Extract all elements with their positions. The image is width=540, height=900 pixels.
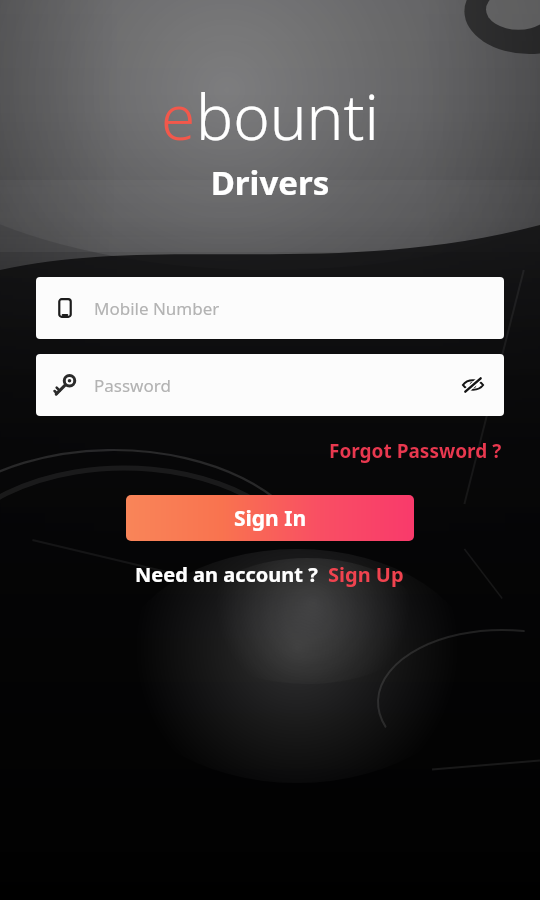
staticText: Sign In <box>234 504 307 533</box>
staticText: bounti <box>196 74 379 158</box>
button[interactable]: Sign Up <box>326 557 406 592</box>
staticText: Sign Up <box>328 561 404 588</box>
button[interactable]: Forgot Password ? <box>327 434 504 468</box>
staticText: Forgot Password ? <box>329 438 502 464</box>
button[interactable]: Sign In <box>126 495 414 541</box>
staticText: Password <box>94 374 456 397</box>
staticText: Drivers <box>0 160 540 205</box>
button[interactable]: Mobile Number <box>36 277 504 339</box>
staticText: Mobile Number <box>94 297 490 320</box>
button[interactable]: Show password <box>456 368 490 402</box>
staticText: Need an account ? <box>135 561 318 588</box>
button[interactable]: Password <box>36 354 504 416</box>
staticText: e <box>161 74 196 158</box>
